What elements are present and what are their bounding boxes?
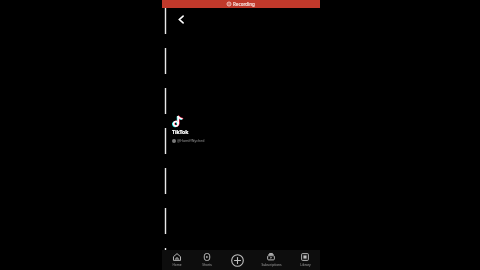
- staticText: @HamiffNyched: [177, 138, 205, 143]
- button[interactable]: Library: [290, 250, 320, 270]
- button[interactable]: Subscriptions: [252, 250, 290, 270]
- button[interactable]: Back: [172, 10, 190, 28]
- staticText: Home: [172, 263, 182, 267]
- staticText: Shorts: [202, 263, 212, 267]
- button[interactable]: Home: [162, 250, 192, 270]
- button[interactable]: Recording: [162, 0, 320, 8]
- staticText: Subscriptions: [261, 263, 282, 267]
- staticText: Recording: [233, 1, 255, 7]
- staticText: TikTok: [172, 129, 189, 136]
- staticText: Library: [300, 263, 311, 267]
- button[interactable]: Create: [222, 250, 252, 270]
- button[interactable]: Shorts: [192, 250, 222, 270]
